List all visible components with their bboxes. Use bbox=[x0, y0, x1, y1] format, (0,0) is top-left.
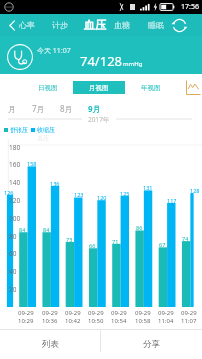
button[interactable]: 睡眠 bbox=[145, 14, 166, 36]
staticText: 血压 bbox=[84, 18, 106, 32]
staticText: 17:56 bbox=[181, 2, 199, 12]
button[interactable]: 血糖 bbox=[110, 14, 134, 36]
staticText: mmHg bbox=[123, 60, 143, 68]
staticText: 月 bbox=[8, 104, 16, 114]
staticText: 7月 bbox=[32, 103, 45, 114]
staticText: 心率 bbox=[19, 20, 35, 30]
staticText: 今天 11:07 bbox=[37, 46, 71, 56]
staticText: 120 bbox=[9, 196, 21, 205]
staticText: 09-29 bbox=[111, 309, 127, 317]
staticText: 09-29 bbox=[181, 309, 197, 317]
button[interactable]: 8月 bbox=[52, 100, 80, 117]
staticText: 73 bbox=[66, 236, 73, 243]
staticText: 66 bbox=[89, 242, 96, 249]
staticText: 126 bbox=[4, 189, 14, 196]
staticText: 10:54 bbox=[111, 317, 127, 325]
button[interactable]: 月 bbox=[0, 100, 24, 117]
staticText: 9月 bbox=[88, 103, 101, 114]
staticText: 84 bbox=[43, 226, 50, 233]
staticText: 血糖 bbox=[114, 20, 130, 30]
staticText: 计步 bbox=[52, 20, 68, 30]
staticText: 10:36 bbox=[42, 317, 58, 325]
button[interactable]: 年视图 bbox=[125, 81, 177, 94]
staticText: 160 bbox=[9, 160, 21, 169]
button[interactable]: 血压 bbox=[81, 14, 109, 36]
staticText: 11:04 bbox=[158, 317, 174, 325]
staticText: 131 bbox=[143, 184, 153, 191]
staticText: 10:58 bbox=[135, 317, 151, 325]
staticText: 125 bbox=[120, 190, 130, 197]
staticText: 100 bbox=[9, 214, 21, 223]
staticText: 80 bbox=[9, 232, 17, 241]
button[interactable]: 分享 bbox=[101, 330, 202, 359]
staticText: 2017年 bbox=[88, 115, 110, 124]
staticText: 分享 bbox=[143, 339, 160, 350]
staticText: 123 bbox=[74, 191, 84, 198]
staticText: 列表 bbox=[42, 339, 59, 350]
staticText: 136 bbox=[50, 180, 60, 187]
button[interactable]: 心率 bbox=[16, 14, 38, 36]
staticText: 09-29 bbox=[65, 309, 81, 317]
button[interactable]: 列表 bbox=[0, 330, 100, 359]
staticText: 74 bbox=[182, 235, 189, 242]
staticText: 10:50 bbox=[88, 317, 104, 325]
staticText: 月视图 bbox=[89, 84, 109, 92]
staticText: 67 bbox=[159, 241, 166, 248]
button[interactable]: Refresh bbox=[168, 14, 190, 36]
staticText: 120 bbox=[97, 194, 107, 201]
staticText: 8月 bbox=[60, 103, 73, 114]
staticText: 60 bbox=[9, 249, 17, 258]
staticText: 86 bbox=[136, 224, 143, 231]
staticText: 10:29 bbox=[18, 317, 34, 325]
staticText: 09-29 bbox=[135, 309, 151, 317]
staticText: 180 bbox=[9, 143, 21, 152]
staticText: 140 bbox=[9, 178, 21, 187]
staticText: 158 bbox=[27, 160, 37, 167]
staticText: 09-29 bbox=[158, 309, 174, 317]
staticText: 日视图 bbox=[38, 84, 58, 92]
staticText: 09-29 bbox=[42, 309, 58, 317]
staticText: 40 bbox=[9, 267, 17, 276]
staticText: 10:42 bbox=[65, 317, 81, 325]
button[interactable]: Back bbox=[2, 14, 20, 36]
staticText: 128 bbox=[190, 187, 200, 194]
button[interactable]: Line chart bbox=[185, 80, 201, 96]
staticText: 11:07 bbox=[181, 317, 197, 325]
button[interactable]: 9月 bbox=[80, 100, 108, 117]
button[interactable]: 计步 bbox=[49, 14, 71, 36]
staticText: 117 bbox=[167, 197, 177, 204]
button[interactable]: 7月 bbox=[24, 100, 52, 117]
staticText: 20 bbox=[9, 285, 17, 294]
staticText: 84 bbox=[19, 226, 26, 233]
staticText: 71 bbox=[112, 238, 119, 245]
staticText: 09-29 bbox=[18, 309, 34, 317]
staticText: 血压 bbox=[37, 134, 49, 142]
button[interactable]: 日视图 bbox=[22, 81, 73, 94]
staticText: 年视图 bbox=[141, 84, 161, 92]
staticText: 睡眠 bbox=[148, 20, 164, 30]
staticText: 09-29 bbox=[88, 309, 104, 317]
staticText: 收缩压 bbox=[37, 126, 55, 134]
staticText: 舒张压 bbox=[10, 126, 28, 134]
button[interactable]: 月视图 bbox=[73, 81, 125, 94]
staticText: 74/128 bbox=[80, 52, 123, 70]
